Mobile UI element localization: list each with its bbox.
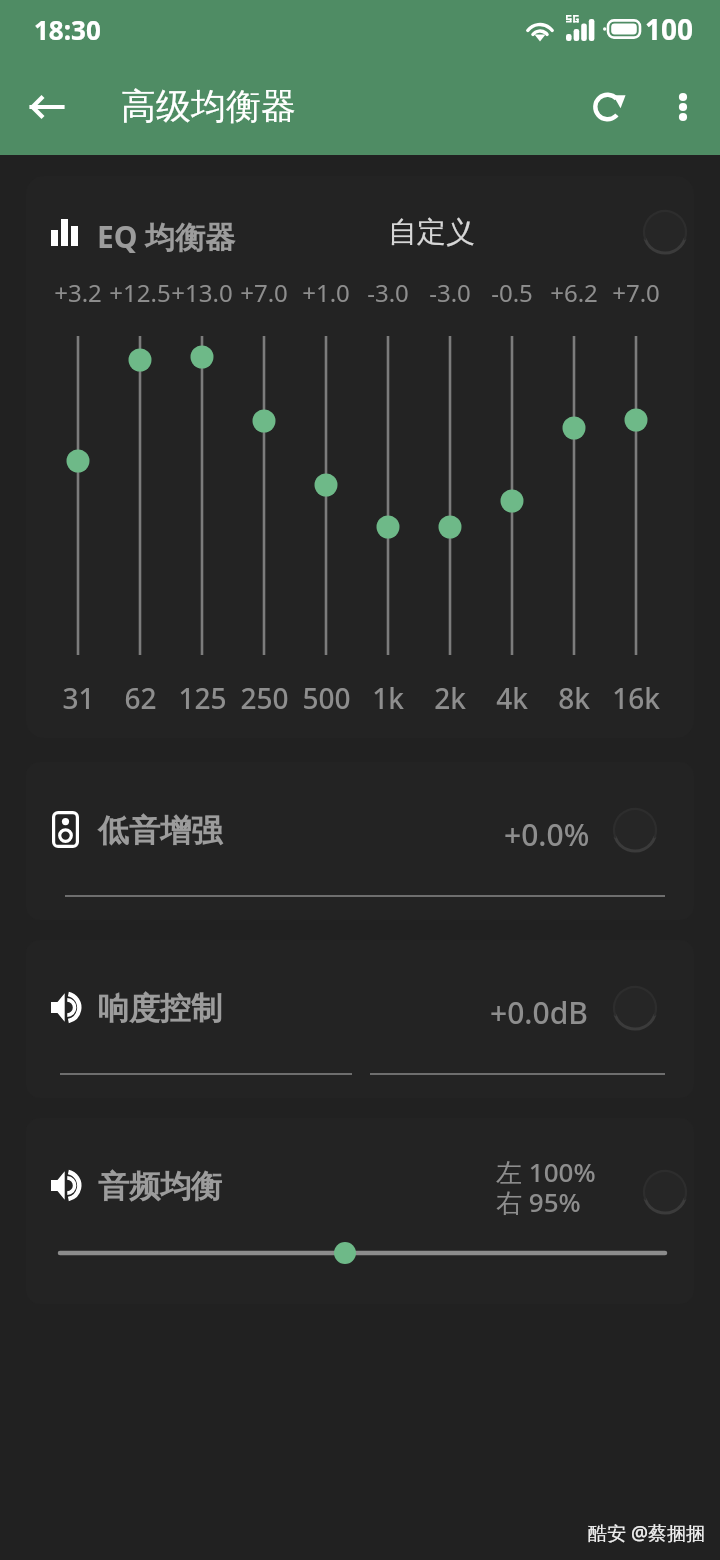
button[interactable]: Toggle [611,806,659,854]
button[interactable]: 响度控制 [26,940,694,1098]
staticText: 自定义 [388,214,475,251]
staticText: EQ 均衡器 [97,216,236,257]
staticText: 左 100% [496,1154,596,1190]
button[interactable]: Toggle [641,1168,689,1216]
button[interactable] [50,1170,81,1201]
staticText: 500 [302,679,351,717]
button[interactable]: 自定义 [378,204,485,260]
button[interactable]: 低音增强 [26,762,694,920]
staticText: 响度控制 [98,989,222,1028]
staticText: 16k [612,679,660,717]
staticText: 高级均衡器 [121,84,296,128]
staticText: 1k [372,679,404,717]
staticText: +12.5 [109,276,171,309]
staticText: 100 [645,10,694,48]
staticText: 8k [558,679,590,717]
staticText: 62 [124,679,157,717]
button[interactable] [26,1118,694,1304]
staticText: +7.0 [612,276,660,309]
staticText: 音频均衡 [98,1167,222,1206]
button[interactable]: Refresh [579,75,643,139]
staticText: 250 [240,679,289,717]
staticText: -3.0 [429,276,471,309]
button[interactable]: Toggle [641,208,689,256]
staticText: +6.2 [550,276,598,309]
staticText: +1.0 [302,276,350,309]
staticText: 右 95% [496,1184,581,1220]
staticText: 125 [178,679,227,717]
staticText: 31 [62,679,95,717]
staticText: 18:30 [34,12,101,47]
staticText: +0.0dB [490,992,588,1033]
staticText: +7.0 [240,276,288,309]
staticText: -3.0 [367,276,409,309]
staticText: -0.5 [491,276,533,309]
staticText: 2k [434,679,466,717]
staticText: 4k [496,679,528,717]
staticText: +13.0 [171,276,233,309]
button[interactable]: Back [15,75,79,139]
staticText: +0.0% [504,814,590,855]
staticText: +3.2 [54,276,102,309]
button[interactable]: More options [655,79,711,135]
button[interactable]: Toggle [611,984,659,1032]
staticText: 低音增强 [98,811,222,850]
staticText: 酷安 @蔡捆捆 [588,1520,706,1546]
